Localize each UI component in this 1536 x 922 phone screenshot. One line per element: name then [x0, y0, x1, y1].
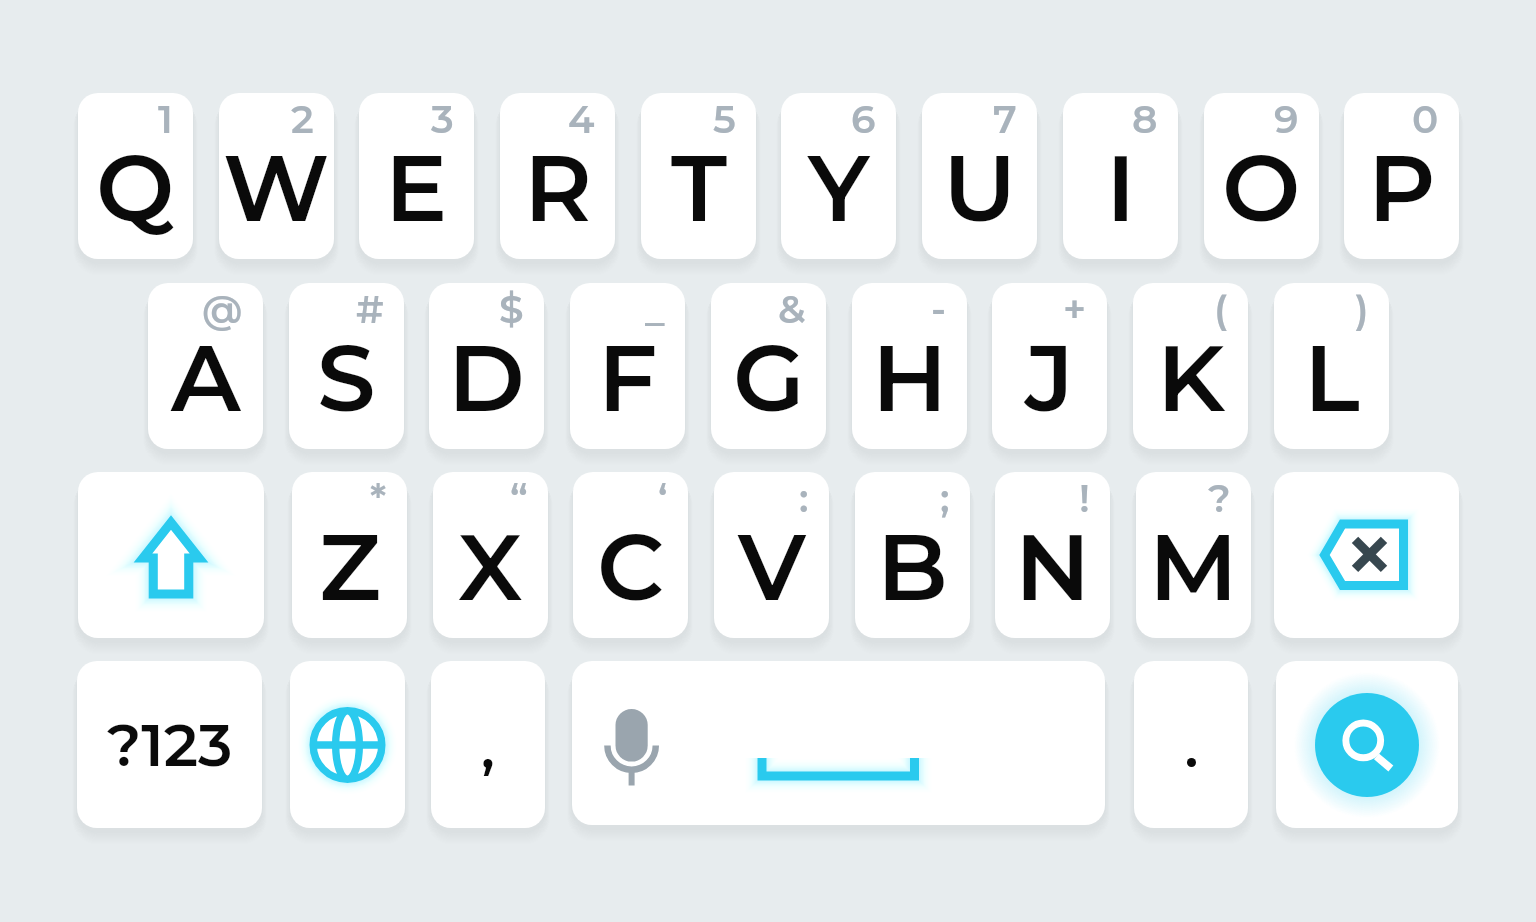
staticText: ; [940, 474, 950, 522]
staticText: V [738, 510, 806, 623]
staticText: $ [499, 285, 524, 333]
staticText: : [799, 474, 809, 522]
staticText: 1 [158, 95, 173, 143]
button[interactable]: 7 [922, 93, 1037, 259]
button[interactable]: + [992, 283, 1107, 449]
staticText: L [1304, 321, 1360, 434]
staticText: H [872, 321, 948, 434]
staticText: Q [96, 131, 175, 244]
staticText: T [671, 131, 727, 244]
staticText: 8 [1132, 95, 1158, 143]
staticText: “ [510, 474, 528, 522]
button[interactable]: # [289, 283, 404, 449]
button[interactable]: _ [570, 283, 685, 449]
button[interactable]: Backspace [1274, 472, 1459, 638]
button[interactable]: Shift [78, 472, 264, 638]
button[interactable]: ?123 [77, 661, 262, 828]
button[interactable]: 1 [78, 93, 193, 259]
staticText: W [223, 131, 330, 244]
staticText: _ [645, 285, 665, 333]
staticText: @ [202, 285, 243, 333]
staticText: M [1149, 510, 1238, 623]
staticText: A [171, 321, 241, 434]
button[interactable]: : [714, 472, 829, 638]
button[interactable]: , [431, 661, 545, 828]
staticText: 2 [291, 95, 314, 143]
button[interactable]: 2 [219, 93, 334, 259]
staticText: D [448, 321, 525, 434]
button[interactable]: Search [1276, 661, 1458, 828]
button[interactable]: ? [1136, 472, 1251, 638]
staticText: U [943, 131, 1017, 244]
staticText: - [931, 285, 947, 333]
button[interactable]: * [292, 472, 407, 638]
button[interactable]: ; [855, 472, 970, 638]
staticText: * [370, 474, 387, 522]
button[interactable]: ) [1274, 283, 1389, 449]
button[interactable]: 4 [500, 93, 615, 259]
staticText: ) [1355, 285, 1369, 333]
staticText: 6 [851, 95, 876, 143]
staticText: ! [1079, 474, 1090, 522]
staticText: F [598, 321, 658, 434]
button[interactable]: ( [1133, 283, 1248, 449]
staticText: 5 [713, 95, 736, 143]
staticText: O [1222, 131, 1301, 244]
staticText: P [1368, 131, 1436, 244]
staticText: 4 [568, 95, 595, 143]
staticText: G [733, 321, 805, 434]
button[interactable]: 3 [359, 93, 474, 259]
staticText: S [317, 321, 376, 434]
staticText: ‘ [658, 474, 668, 522]
staticText: I [1106, 131, 1136, 244]
button[interactable]: 6 [781, 93, 896, 259]
staticText: 0 [1412, 95, 1439, 143]
staticText: 7 [993, 95, 1017, 143]
staticText: ? [1208, 474, 1231, 522]
staticText: 3 [431, 95, 454, 143]
staticText: N [1015, 510, 1091, 623]
button[interactable]: ‘ [573, 472, 688, 638]
staticText: ?123 [107, 709, 233, 781]
staticText: Z [319, 510, 381, 623]
button[interactable]: 8 [1063, 93, 1178, 259]
staticText: ( [1214, 285, 1228, 333]
button[interactable]: $ [429, 283, 544, 449]
staticText: E [385, 131, 448, 244]
button[interactable]: 5 [641, 93, 756, 259]
button[interactable]: Period [1134, 661, 1248, 828]
staticText: + [1063, 285, 1087, 333]
button[interactable]: & [711, 283, 826, 449]
staticText: K [1157, 321, 1225, 434]
button[interactable]: Space [572, 661, 1105, 825]
button[interactable]: Change language [290, 661, 405, 828]
button[interactable]: 0 [1344, 93, 1459, 259]
staticText: C [597, 510, 664, 623]
staticText: R [524, 131, 592, 244]
button[interactable]: 9 [1204, 93, 1319, 259]
staticText: & [778, 285, 806, 333]
staticText: X [458, 510, 523, 623]
button[interactable]: @ [148, 283, 263, 449]
staticText: Y [808, 131, 870, 244]
button[interactable]: ! [995, 472, 1110, 638]
staticText: B [877, 510, 948, 623]
button[interactable]: “ [433, 472, 548, 638]
button[interactable]: - [852, 283, 967, 449]
staticText: 9 [1274, 95, 1299, 143]
staticText: , [481, 714, 495, 782]
staticText: J [1025, 321, 1075, 434]
staticText: # [356, 285, 384, 333]
